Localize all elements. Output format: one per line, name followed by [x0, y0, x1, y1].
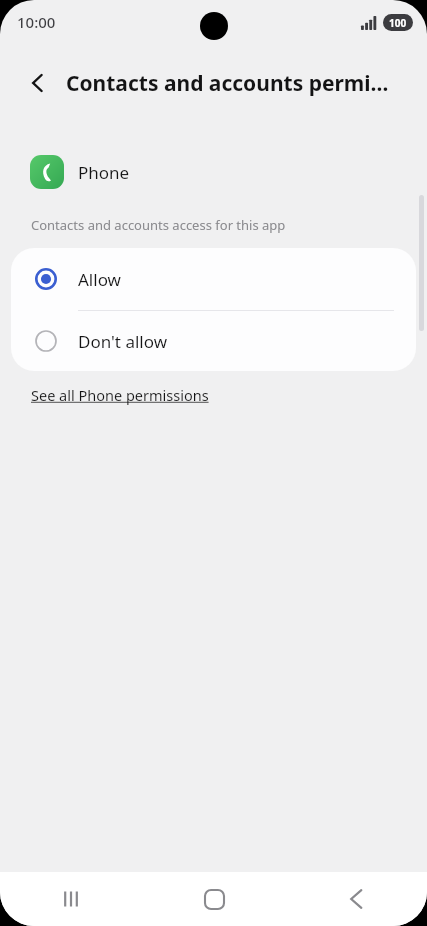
- button[interactable]: Allow: [11, 248, 416, 310]
- staticText: Allow: [78, 268, 121, 291]
- staticText: 10:00: [17, 12, 56, 32]
- button[interactable]: Recent apps: [0, 872, 143, 926]
- button[interactable]: See all Phone permissions: [31, 385, 209, 405]
- button[interactable]: Back: [14, 59, 62, 107]
- button[interactable]: Back: [285, 872, 427, 926]
- button[interactable]: Phone: [0, 150, 427, 194]
- staticText: Contacts and accounts permi…: [66, 69, 389, 98]
- staticText: Contacts and accounts access for this ap…: [31, 216, 286, 234]
- button[interactable]: Home: [143, 872, 285, 926]
- staticText: Phone: [78, 161, 130, 184]
- button[interactable]: Don't allow: [11, 311, 416, 371]
- staticText: 100: [389, 16, 407, 30]
- staticText: Don't allow: [78, 330, 168, 353]
- staticText: See all Phone permissions: [31, 385, 209, 405]
